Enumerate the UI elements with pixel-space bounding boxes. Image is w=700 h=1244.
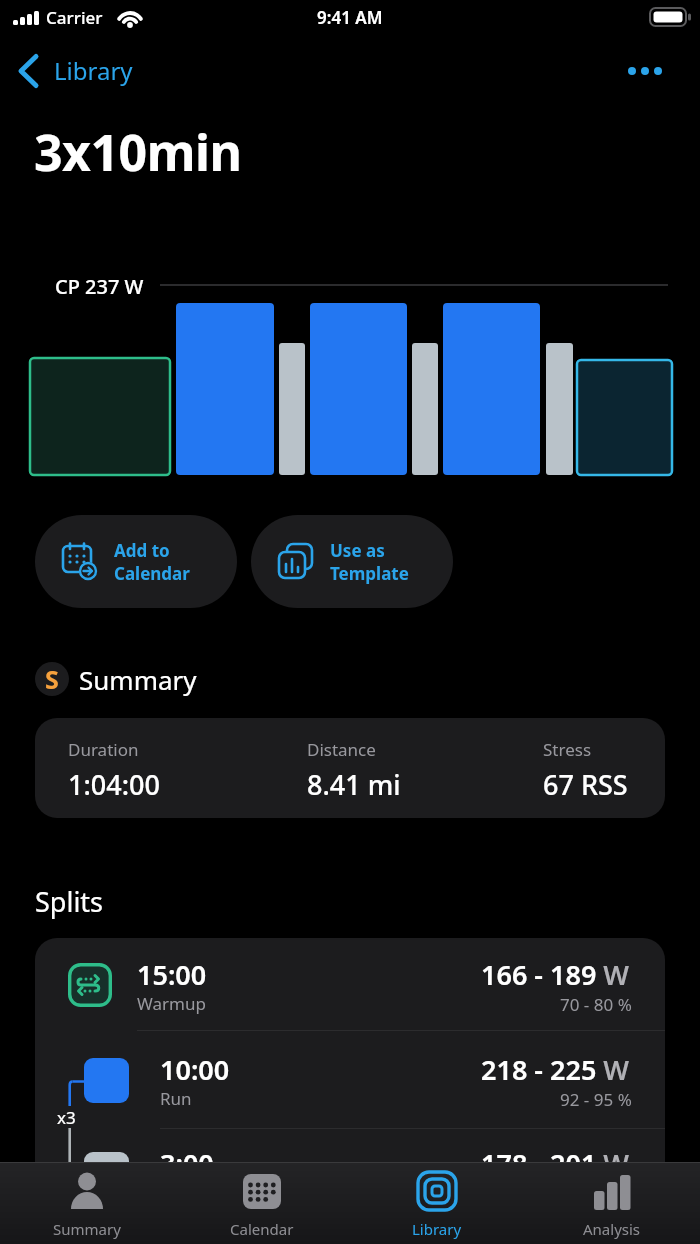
staticText: 166 - 189 W [481,956,630,993]
staticText: 92 - 95 % [560,1088,632,1111]
staticText: 3x10min [34,118,242,186]
button[interactable] [624,56,666,86]
button[interactable]: Add to [35,515,237,608]
button[interactable]: Use as [251,515,453,608]
button[interactable]: Analysis [552,1171,672,1243]
staticText: Analysis [583,1219,641,1239]
staticText: 1:04:00 [68,766,160,803]
staticText: Summary [79,662,197,696]
staticText: 3:00 [160,1145,214,1182]
staticText: Calendar [230,1219,294,1239]
staticText: Carrier [46,6,103,29]
staticText: Calendar [114,562,190,585]
staticText: 15:00 [137,956,207,993]
staticText: Stress [543,738,592,761]
staticText: Add to [114,539,170,562]
staticText: S [45,662,59,696]
staticText: Duration [68,738,139,761]
staticText: Library [54,54,133,87]
staticText: CP 237 W [55,273,144,300]
staticText: Summary [53,1219,121,1239]
staticText: 70 - 80 % [560,993,632,1016]
staticText: Distance [307,738,376,761]
staticText: Template [330,562,409,585]
button[interactable]: Calendar [202,1171,322,1243]
staticText: 218 - 225 W [481,1051,630,1088]
staticText: x3 [57,1106,76,1129]
staticText: 10:00 [160,1051,230,1088]
staticText: 67 RSS [543,766,628,803]
staticText: Splits [35,883,104,920]
staticText: Run [160,1087,192,1110]
staticText: Library [412,1219,462,1239]
staticText: 8.41 mi [307,766,401,803]
button[interactable]: Summary [27,1171,147,1243]
staticText: Warmup [137,992,206,1015]
button[interactable]: Library [0,49,129,93]
staticText: 9:41 AM [317,6,383,29]
staticText: Use as [330,539,385,562]
staticText: 178 - 201 W [481,1145,630,1182]
button[interactable]: Library [377,1171,497,1243]
